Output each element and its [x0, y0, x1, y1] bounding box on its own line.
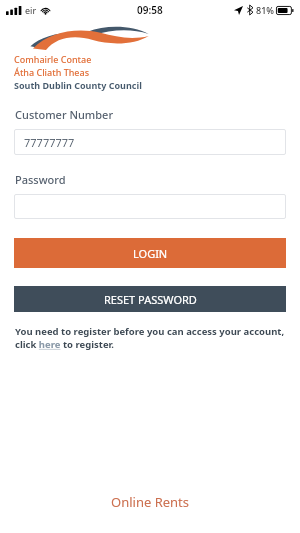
staticText: LOGIN	[133, 246, 168, 261]
staticText: eir	[25, 4, 37, 16]
button[interactable]: 77777777	[14, 129, 286, 155]
staticText: Customer Number	[15, 107, 114, 122]
button[interactable]: LOGIN	[14, 238, 286, 268]
staticText: Password	[15, 172, 66, 187]
staticText: Átha Cliath Theas	[14, 66, 90, 78]
staticText: You need to register before you can acce…	[15, 325, 285, 351]
staticText: RESET PASSWORD	[104, 292, 197, 307]
button[interactable]: RESET PASSWORD	[14, 286, 286, 312]
staticText: 81%	[256, 4, 274, 16]
staticText: 77777777	[24, 135, 75, 150]
staticText: Comhairle Contae	[14, 53, 92, 65]
staticText: South Dublin County Council	[14, 79, 142, 91]
button[interactable]: Online Rents	[111, 493, 190, 511]
button[interactable]	[14, 194, 286, 219]
staticText: 09:58	[137, 3, 163, 17]
